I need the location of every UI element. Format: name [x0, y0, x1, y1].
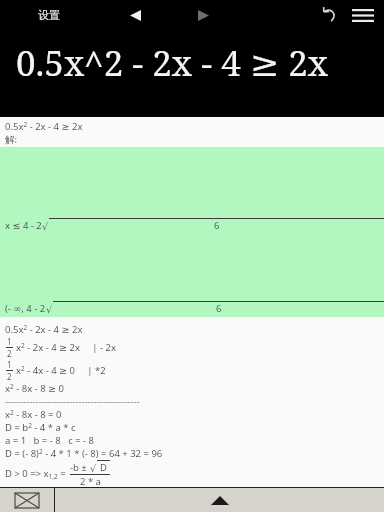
- staticText: x2 - 8x - 8 = 0: [5, 408, 62, 421]
- staticText: 0.5x2 - 2x - 4 ≥ 2x: [5, 323, 83, 336]
- staticText: -b ±: [70, 461, 90, 474]
- staticText: 6: [216, 302, 222, 315]
- staticText: 1: [7, 359, 12, 370]
- button[interactable]: Expand: [55, 488, 384, 512]
- staticText: √: [42, 221, 49, 232]
- staticText: x2 - 2x - 4 ≥ 2x | - 2x: [16, 341, 117, 354]
- staticText: 解:: [5, 133, 18, 146]
- staticText: a = 1 b = - 8 c = - 8: [5, 434, 95, 447]
- button[interactable]: Menu: [346, 0, 380, 30]
- staticText: x2 - 4x - 4 ≥ 0 | *2: [16, 364, 106, 377]
- staticText: √: [46, 304, 53, 315]
- staticText: D = b2 - 4 * a * c: [5, 421, 76, 434]
- staticText: x2 - 8x - 8 ≥ 0: [5, 382, 64, 395]
- staticText: ----------------------------------------…: [5, 395, 140, 408]
- staticText: 2: [7, 348, 12, 359]
- staticText: 0.5x^2 - 2x - 4 ≥ 2x: [16, 39, 329, 87]
- staticText: 2: [7, 371, 12, 382]
- staticText: (- ∞, 4 - 2: [5, 302, 46, 315]
- staticText: D = (- 8)2 - 4 * 1 * (- 8) = 64 + 32 = 9…: [5, 447, 163, 460]
- button[interactable]: Next: [190, 2, 216, 28]
- staticText: D: [100, 461, 107, 474]
- staticText: √: [90, 463, 97, 474]
- staticText: D > 0 => x1,2 =: [5, 467, 69, 481]
- button[interactable]: Undo: [314, 0, 344, 30]
- staticText: 设置: [38, 8, 60, 22]
- button[interactable]: Previous: [122, 2, 148, 28]
- staticText: 0.5x2 - 2x - 4 ≥ 2x: [5, 120, 83, 133]
- button[interactable]: Messages: [0, 488, 54, 512]
- staticText: 6: [214, 219, 220, 232]
- staticText: 2 * a: [80, 475, 101, 487]
- staticText: x ≤ 4 - 2: [5, 219, 42, 232]
- staticText: 1: [7, 336, 12, 347]
- button[interactable]: 设置: [34, 4, 64, 26]
